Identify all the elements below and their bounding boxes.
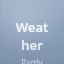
staticText: Weather xyxy=(14,18,50,54)
staticText: Partly cloudy xyxy=(14,57,50,64)
